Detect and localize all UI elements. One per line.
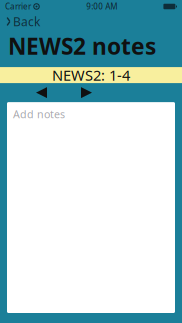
button[interactable]: Next — [75, 85, 98, 100]
button[interactable]: Back — [0, 10, 46, 32]
button[interactable]: Previous — [30, 85, 53, 100]
button[interactable]: Add notes — [7, 102, 175, 313]
staticText: Carrier — [5, 1, 31, 12]
staticText: Back — [13, 13, 40, 29]
staticText: NEWS2: 1-4 — [52, 65, 130, 85]
staticText: 9:00 AM — [86, 1, 117, 12]
staticText: Add notes — [13, 107, 65, 121]
staticText: NEWS2 notes — [8, 31, 156, 61]
